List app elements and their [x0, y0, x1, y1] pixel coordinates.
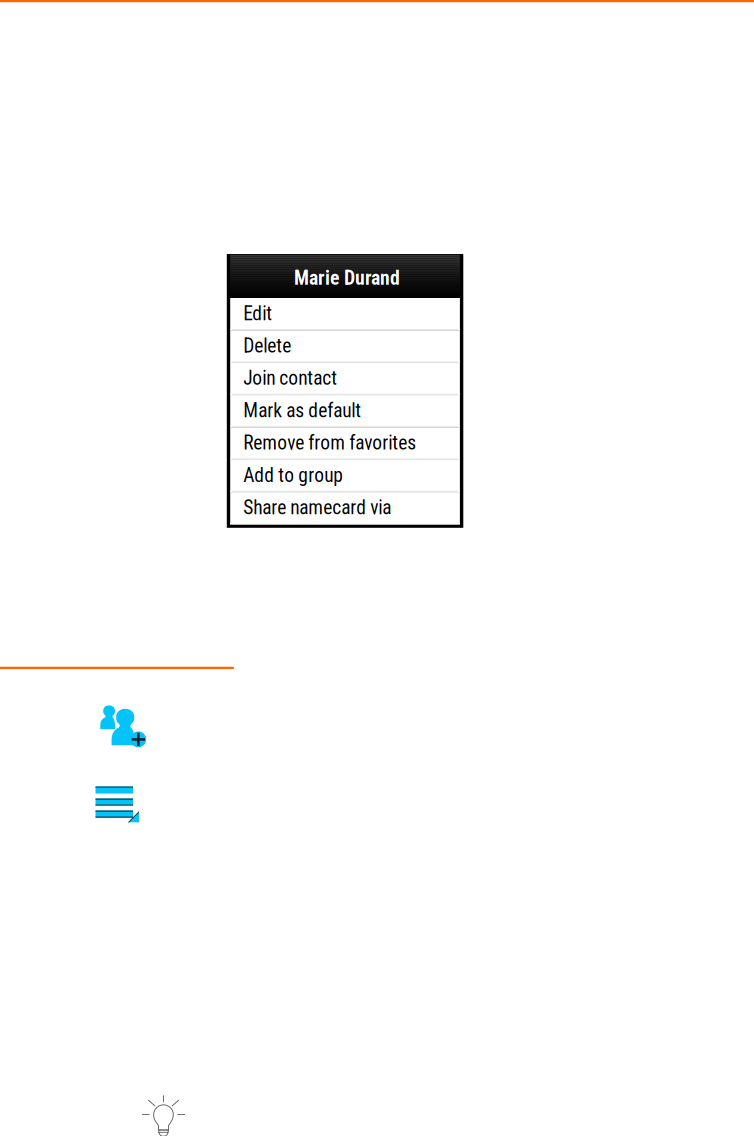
staticText: Remove from favorites	[243, 431, 416, 454]
button[interactable]: Edit	[230, 298, 460, 330]
staticText: Marie Durand	[294, 266, 400, 289]
staticText: Share namecard via	[243, 496, 391, 519]
button[interactable]: Mark as default	[230, 395, 460, 427]
staticText: Join contact	[243, 367, 337, 390]
staticText: Delete	[243, 334, 291, 357]
button[interactable]: Join contact	[230, 363, 460, 395]
staticText: Add to group	[243, 464, 343, 487]
button[interactable]: Remove from favorites	[230, 427, 460, 460]
button[interactable]: Share namecard via	[230, 492, 460, 524]
button[interactable]: Add to group	[230, 460, 460, 492]
staticText: Edit	[243, 302, 272, 325]
staticText: Mark as default	[243, 399, 361, 422]
button[interactable]: Delete	[230, 330, 460, 363]
